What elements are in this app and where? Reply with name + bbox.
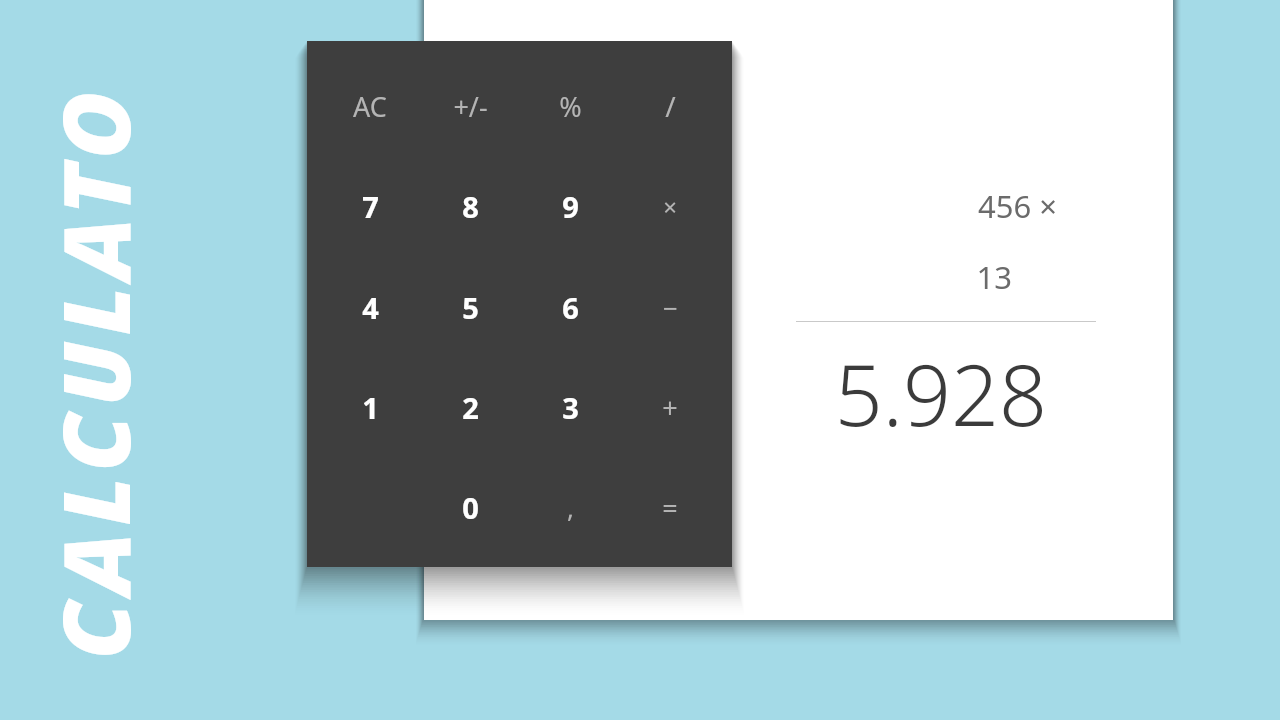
staticText: / [665,87,676,125]
staticText: , [567,490,574,525]
staticText: × [663,190,677,223]
staticText: 3 [562,388,579,427]
button[interactable]: 9 [526,169,614,243]
staticText: 4 [362,288,379,327]
button[interactable]: Add [626,370,714,444]
button[interactable]: 5 [426,270,514,344]
staticText: = [662,489,678,526]
staticText: + [662,389,678,426]
button[interactable]: Percent [526,69,614,143]
staticText: 5 [462,288,479,327]
button[interactable]: 6 [526,270,614,344]
staticText: 2 [462,388,479,427]
button[interactable]: 2 [426,370,514,444]
staticText: 5.928 [747,336,1047,446]
staticText: − [663,290,678,325]
button[interactable]: Toggle sign [426,69,514,143]
button[interactable]: 7 [326,169,414,243]
staticText: 13 [712,256,1012,300]
button[interactable]: Decimal separator [526,470,614,544]
staticText: 1 [362,388,379,427]
button[interactable]: Subtract [626,270,714,344]
staticText: 456 × [757,185,1057,229]
staticText: CALCULATOR [32,52,152,692]
button[interactable]: AC [326,69,414,143]
button[interactable]: 4 [326,270,414,344]
staticText: 9 [562,187,579,226]
button[interactable]: 1 [326,370,414,444]
button[interactable]: 0 [426,470,514,544]
staticText: AC [353,88,387,125]
staticText: 7 [362,187,379,226]
button[interactable]: Divide [626,69,714,143]
staticText: 6 [562,288,579,327]
button[interactable]: 3 [526,370,614,444]
staticText: 0 [462,488,479,527]
button[interactable]: Multiply [626,169,714,243]
button[interactable]: 8 [426,169,514,243]
button[interactable]: Equals [626,470,714,544]
staticText: +/- [453,88,488,125]
staticText: 8 [462,187,479,226]
staticText: % [559,88,582,125]
